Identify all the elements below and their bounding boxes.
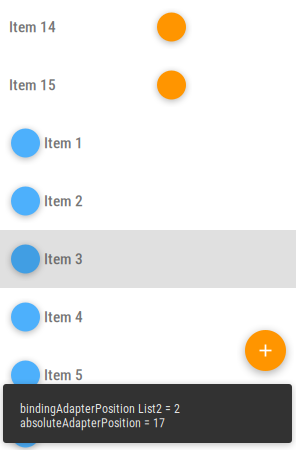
- staticText: Item 15: [9, 76, 56, 94]
- staticText: Item 6: [44, 424, 83, 442]
- staticText: Item 2: [44, 192, 83, 210]
- button[interactable]: Item 6: [0, 404, 296, 450]
- button[interactable]: Item 15: [0, 56, 296, 114]
- staticText: bindingAdapterPosition List2 = 2: [20, 402, 180, 416]
- staticText: Item 1: [44, 134, 83, 152]
- button[interactable]: Add: [245, 330, 286, 371]
- button[interactable]: Item 3: [0, 230, 296, 288]
- staticText: Item 5: [44, 366, 83, 384]
- staticText: absoluteAdapterPosition = 17: [20, 416, 165, 430]
- staticText: Item 14: [9, 18, 56, 36]
- button[interactable]: Item 14: [0, 0, 296, 56]
- staticText: Item 3: [44, 250, 83, 268]
- button[interactable]: Item 5: [0, 346, 296, 404]
- button[interactable]: Item 2: [0, 172, 296, 230]
- button[interactable]: Item 1: [0, 114, 296, 172]
- staticText: Item 4: [44, 308, 83, 326]
- button[interactable]: Item 4: [0, 288, 296, 346]
